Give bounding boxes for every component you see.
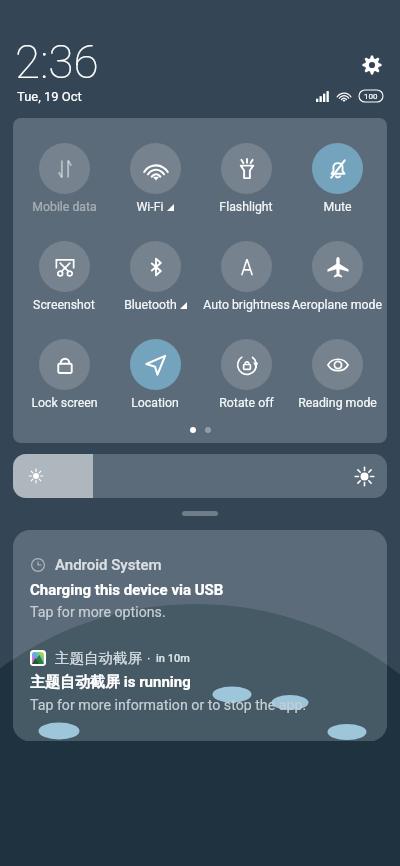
staticText: · (147, 651, 151, 666)
staticText: 100 (364, 92, 378, 101)
staticText: 主题自动截屏 (55, 649, 142, 667)
button[interactable]: Brightness (13, 454, 387, 498)
button[interactable]: Wi-Fi (106, 143, 204, 214)
button[interactable]: Location (106, 339, 204, 410)
button[interactable]: Aeroplane mode (288, 241, 386, 312)
button[interactable]: Rotate off (197, 339, 295, 410)
staticText: Location (131, 396, 179, 410)
staticText: Reading mode (298, 396, 377, 410)
staticText: Auto brightness (203, 298, 290, 312)
staticText: in 10m (156, 652, 190, 665)
staticText: Aeroplane mode (292, 298, 382, 312)
staticText: Tue, 19 Oct (17, 89, 82, 104)
staticText: Charging this device via USB (30, 581, 224, 599)
staticText: Flashlight (219, 200, 273, 214)
button[interactable]: Screenshot (15, 241, 113, 312)
button[interactable]: Mute (288, 143, 386, 214)
button[interactable]: Auto brightness (197, 241, 295, 312)
staticText: Rotate off (219, 396, 274, 410)
button[interactable]: Lock screen (15, 339, 113, 410)
staticText: Lock screen (31, 396, 98, 410)
staticText: Screenshot (33, 298, 95, 312)
staticText: 2:36 (15, 35, 99, 89)
button[interactable]: Android System (13, 530, 387, 741)
staticText: Tap for more information or to stop the … (30, 697, 307, 714)
button[interactable]: Mobile data (15, 143, 113, 214)
staticText: Wi-Fi (136, 200, 164, 214)
staticText: Mute (323, 200, 352, 214)
button[interactable]: Settings (362, 55, 382, 75)
button[interactable]: Flashlight (197, 143, 295, 214)
button[interactable]: Bluetooth (106, 241, 204, 312)
staticText: Bluetooth (124, 298, 177, 312)
button[interactable]: Reading mode (288, 339, 386, 410)
staticText: Android System (55, 556, 162, 574)
staticText: Tap for more options. (30, 604, 166, 621)
staticText: 主题自动截屏 is running (30, 673, 191, 692)
staticText: Mobile data (32, 200, 97, 214)
